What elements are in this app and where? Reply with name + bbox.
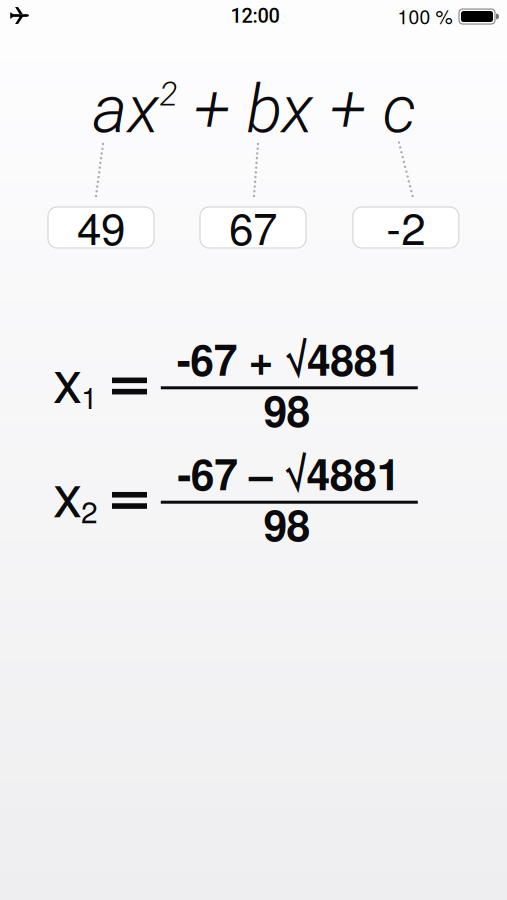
staticText: + bx + c (177, 70, 415, 148)
staticText: 49 (77, 194, 125, 257)
staticText: 2 (159, 74, 177, 114)
staticText: -67 + √4881 (177, 328, 401, 389)
button[interactable]: Coefficient b (200, 207, 306, 248)
staticText: x (53, 336, 82, 420)
staticText: 98 (264, 379, 310, 440)
button[interactable]: Coefficient a (48, 207, 154, 248)
staticText: 98 (264, 493, 310, 554)
button[interactable]: Coefficient c (353, 207, 459, 248)
staticText: 100 % (397, 2, 452, 30)
staticText: ax (92, 70, 159, 148)
staticText: 2 (81, 489, 98, 532)
staticText: 1 (81, 374, 98, 417)
staticText: 67 (229, 194, 277, 257)
staticText: x (53, 450, 82, 534)
staticText: 12:00 (230, 4, 279, 28)
staticText: -67 – √4881 (177, 442, 401, 503)
staticText: -2 (386, 194, 425, 257)
